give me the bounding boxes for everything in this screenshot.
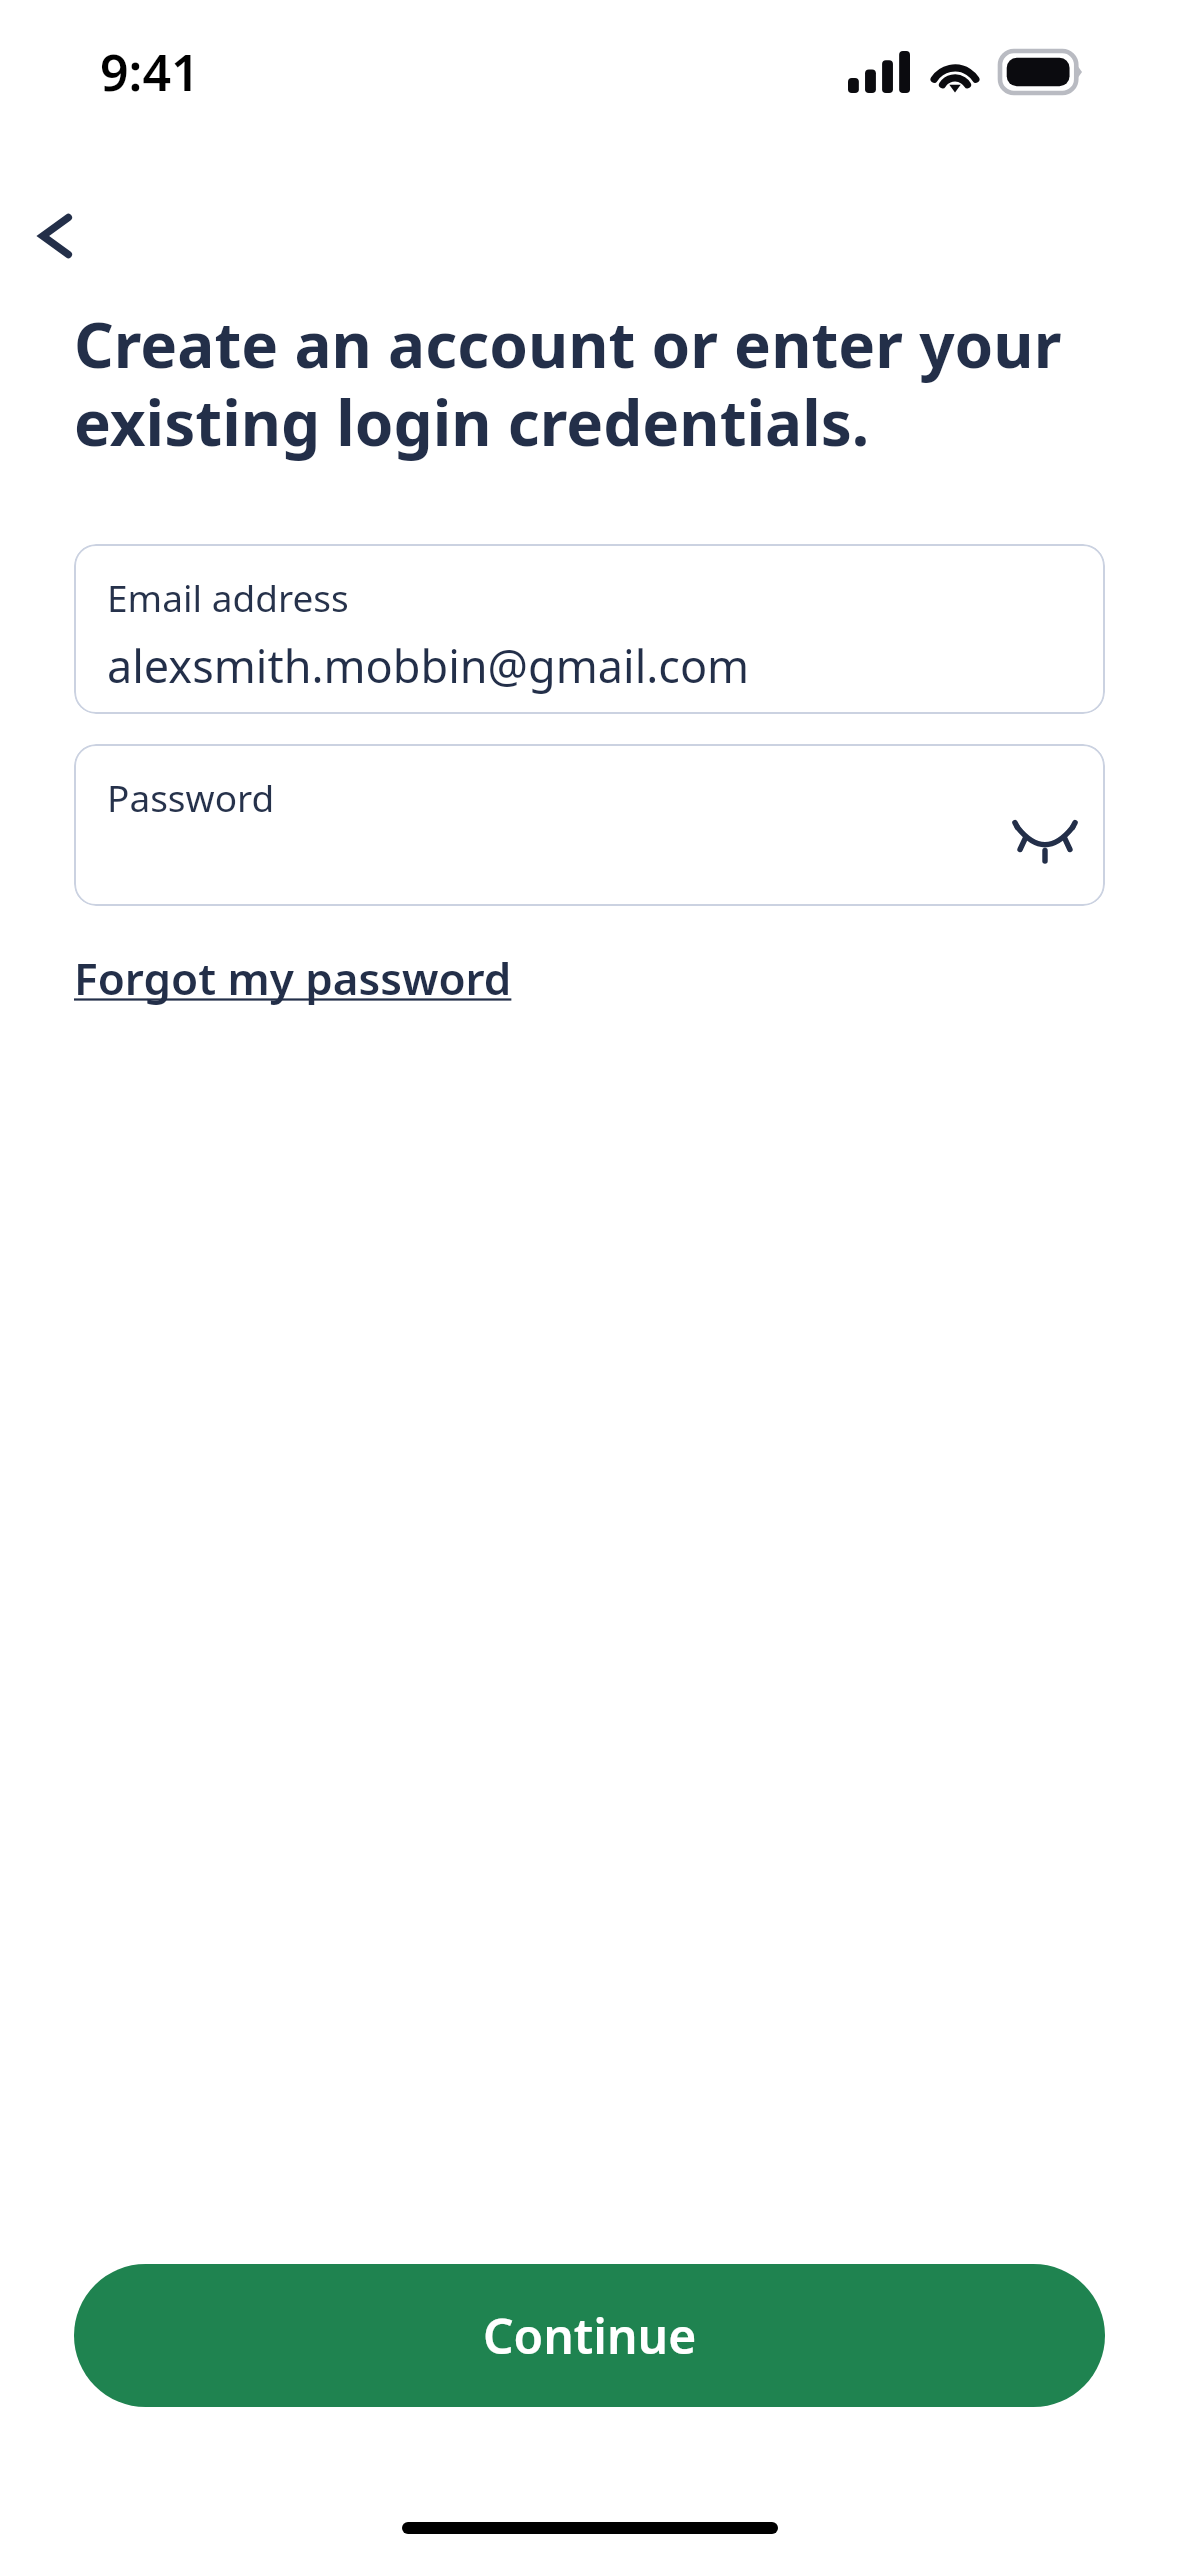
staticText: Email address bbox=[107, 572, 349, 622]
button[interactable]: Continue bbox=[74, 2264, 1105, 2407]
staticText: 9:41 bbox=[100, 38, 200, 106]
staticText: Create an account or enter your existing… bbox=[74, 302, 1105, 464]
staticText: Password bbox=[107, 772, 275, 822]
button[interactable]: Email address bbox=[74, 544, 1105, 714]
staticText: Continue bbox=[483, 2303, 697, 2368]
button[interactable]: Password bbox=[74, 744, 1105, 906]
staticText: alexsmith.mobbin@gmail.com bbox=[107, 635, 750, 696]
button[interactable]: Forgot my password bbox=[74, 948, 512, 1008]
staticText: Forgot my password bbox=[74, 948, 512, 1008]
button[interactable]: Show password bbox=[999, 791, 1091, 883]
button[interactable]: Back bbox=[8, 188, 104, 284]
